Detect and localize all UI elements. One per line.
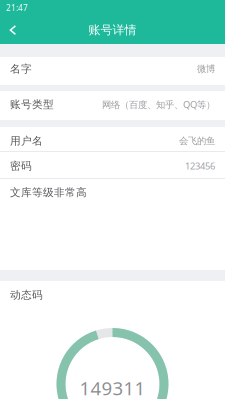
- staticText: 149311: [79, 376, 145, 399]
- staticText: 密码: [10, 159, 32, 172]
- button[interactable]: 密码: [0, 152, 225, 178]
- staticText: 会飞的鱼: [179, 135, 215, 147]
- staticText: 文库等级非常高: [10, 186, 87, 199]
- button[interactable]: 名字: [0, 57, 225, 85]
- button[interactable]: 用户名: [0, 127, 225, 151]
- staticText: 动态码: [10, 288, 43, 301]
- staticText: 名字: [10, 62, 32, 75]
- staticText: 用户名: [10, 134, 43, 147]
- staticText: 21:47: [6, 3, 28, 13]
- staticText: 微博: [197, 63, 215, 75]
- staticText: 账号详情: [88, 23, 136, 37]
- staticText: 123456: [185, 160, 215, 172]
- button[interactable]: 账号类型: [0, 91, 225, 120]
- staticText: 网络（百度、知乎、QQ等）: [102, 98, 215, 111]
- button[interactable]: 文库等级非常高: [0, 179, 225, 270]
- button[interactable]: 返回: [0, 16, 26, 44]
- staticText: 账号类型: [10, 98, 54, 111]
